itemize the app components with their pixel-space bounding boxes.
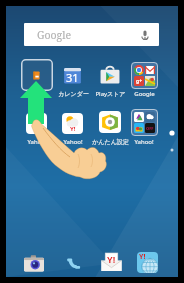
button[interactable]: OFF — [131, 109, 158, 136]
button[interactable] — [99, 65, 121, 87]
staticText: 31 — [66, 70, 79, 85]
staticText: g+ — [136, 78, 143, 85]
button[interactable]: Mail — [99, 250, 123, 274]
staticText: OFF — [146, 126, 154, 131]
button[interactable]: Y! — [26, 113, 47, 134]
staticText: Yahoo! — [134, 138, 154, 146]
staticText: Playストア — [95, 90, 126, 98]
button[interactable] — [99, 111, 121, 133]
staticText: かんたん設定 — [92, 138, 129, 146]
button[interactable]: Browser — [135, 250, 159, 274]
button[interactable]: g+ — [131, 62, 158, 89]
staticText: カレンダー — [58, 90, 89, 98]
staticText: Y! — [70, 125, 76, 133]
button[interactable]: Camera — [22, 251, 46, 275]
button[interactable]: Phone — [62, 251, 86, 275]
staticText: Yahoo! — [63, 138, 83, 146]
button[interactable]: Selected app — [21, 59, 53, 91]
staticText: Y! — [31, 116, 42, 132]
staticText: Yahoo! — [27, 138, 47, 146]
staticText: Y! — [107, 253, 116, 265]
button[interactable] — [31, 70, 42, 81]
button[interactable]: Google — [24, 23, 159, 46]
button[interactable]: Y! — [62, 113, 83, 134]
button[interactable]: Voice search — [136, 26, 154, 44]
staticText: Y! — [139, 252, 146, 262]
staticText: Google — [37, 28, 72, 42]
staticText: Google — [134, 90, 155, 98]
button[interactable]: 31 — [63, 66, 82, 85]
